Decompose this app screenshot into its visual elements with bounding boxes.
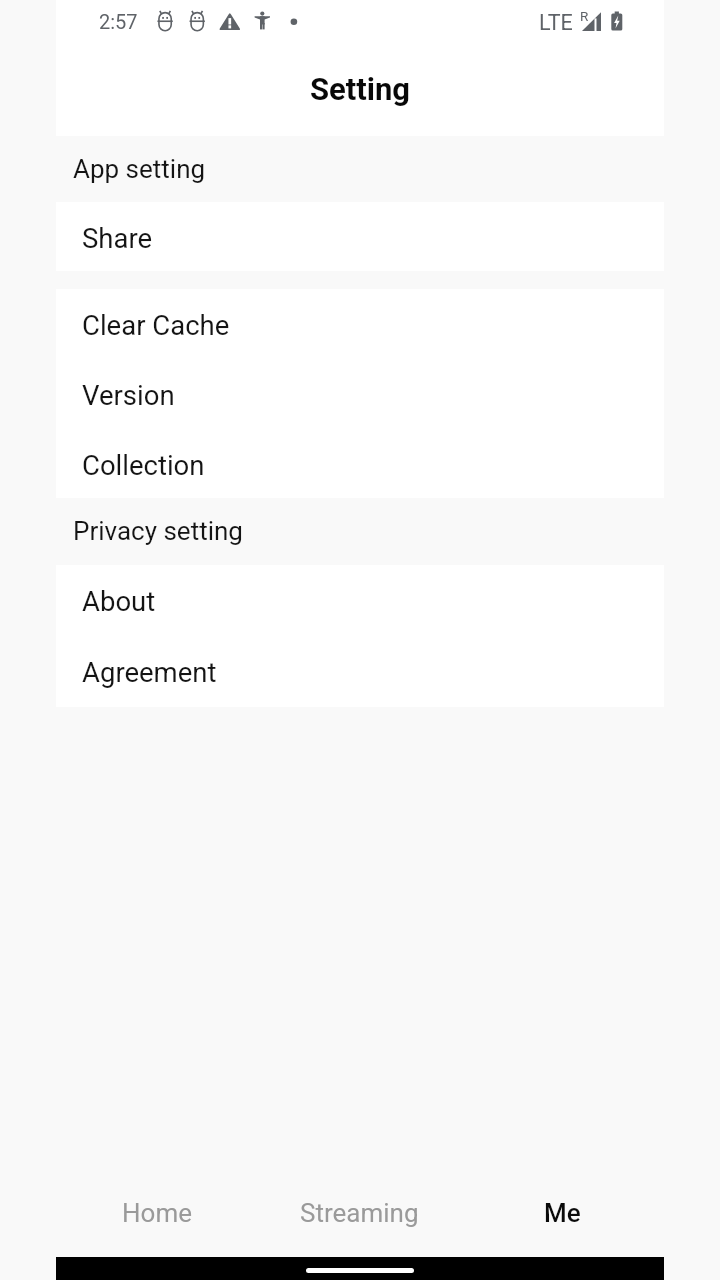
staticText: LTE [539, 10, 573, 35]
button[interactable]: Version [56, 359, 664, 429]
staticText: Collection [82, 449, 205, 481]
staticText: Setting [56, 71, 664, 107]
button[interactable]: Collection [56, 429, 664, 498]
staticText: Clear Cache [82, 309, 230, 341]
staticText: Agreement [82, 656, 217, 688]
button[interactable]: Clear Cache [56, 289, 664, 359]
staticText: Me [544, 1198, 581, 1228]
other: Status icons: USB debugging, warning, ac… [56, 0, 664, 46]
staticText: Version [82, 379, 175, 411]
staticText: Home [122, 1198, 192, 1228]
staticText: Streaming [300, 1198, 419, 1228]
button[interactable]: Streaming [258, 1187, 461, 1257]
staticText: About [82, 585, 156, 617]
button[interactable]: About [56, 565, 664, 636]
staticText: Privacy setting [73, 516, 243, 546]
button[interactable]: Agreement [56, 636, 664, 707]
staticText: R [580, 8, 589, 24]
staticText: App setting [73, 154, 206, 184]
button[interactable]: Me [461, 1187, 664, 1257]
button[interactable]: Home [56, 1187, 258, 1257]
staticText: 2:57 [99, 10, 138, 33]
button[interactable]: Share [56, 202, 664, 271]
staticText: Share [82, 222, 153, 254]
